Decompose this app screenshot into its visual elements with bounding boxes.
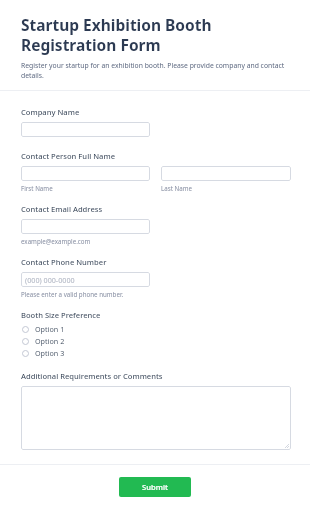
staticText: Contact Person Full Name bbox=[21, 151, 115, 161]
button[interactable] bbox=[21, 386, 291, 450]
button[interactable]: Option 1 bbox=[21, 323, 291, 335]
button[interactable] bbox=[161, 166, 291, 181]
staticText: Please enter a valid phone number. bbox=[21, 290, 124, 298]
button[interactable] bbox=[21, 219, 150, 234]
staticText: Contact Phone Number bbox=[21, 257, 107, 267]
staticText: example@example.com bbox=[21, 237, 91, 245]
staticText: Additional Requirements or Comments bbox=[21, 371, 163, 381]
button[interactable]: Option 2 bbox=[21, 335, 291, 347]
staticText: Option 2 bbox=[35, 336, 65, 346]
staticText: Register your startup for an exhibition … bbox=[21, 61, 294, 80]
staticText: First Name bbox=[21, 184, 53, 192]
staticText: Company Name bbox=[21, 107, 80, 117]
staticText: (000) 000-0000 bbox=[25, 275, 75, 285]
staticText: Last Name bbox=[161, 184, 192, 192]
staticText: Contact Email Address bbox=[21, 204, 103, 214]
button[interactable]: Submit bbox=[119, 477, 191, 497]
staticText: Submit bbox=[142, 482, 168, 492]
button[interactable] bbox=[21, 166, 150, 181]
button[interactable]: (000) 000-0000 bbox=[21, 272, 150, 287]
button[interactable] bbox=[21, 122, 150, 137]
button[interactable]: Option 3 bbox=[21, 347, 291, 359]
staticText: Option 3 bbox=[35, 348, 65, 358]
staticText: Booth Size Preference bbox=[21, 310, 101, 320]
staticText: Option 1 bbox=[35, 324, 65, 334]
staticText: Startup Exhibition Booth Registration Fo… bbox=[21, 14, 294, 55]
